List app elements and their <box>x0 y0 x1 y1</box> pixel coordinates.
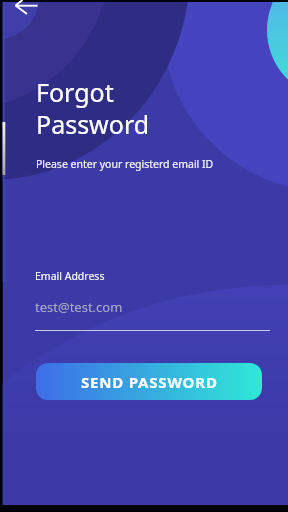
staticText: test@test.com <box>35 298 123 316</box>
button[interactable]: SEND PASSWORD <box>36 363 262 400</box>
button[interactable] <box>8 0 44 22</box>
staticText: Forgot Password <box>36 75 150 141</box>
staticText: Email Address <box>35 269 105 283</box>
staticText: Please enter your registerd email ID <box>36 157 214 171</box>
staticText: SEND PASSWORD <box>81 372 218 392</box>
